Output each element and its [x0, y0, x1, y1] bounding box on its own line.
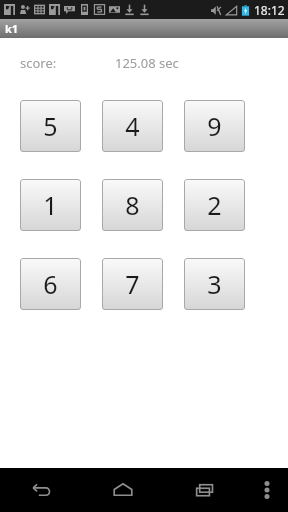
staticText: 8 — [125, 188, 140, 222]
button[interactable]: 3 — [184, 258, 245, 310]
staticText: 125.08 sec — [115, 54, 179, 72]
button[interactable]: 4 — [102, 100, 163, 152]
staticText: 7 — [125, 267, 140, 301]
staticText: score: — [20, 54, 57, 72]
button[interactable]: 8 — [102, 179, 163, 231]
button[interactable]: 6 — [20, 258, 81, 310]
staticText: 1 — [43, 188, 58, 222]
button[interactable]: Home — [82, 468, 164, 512]
staticText: 18:12 — [254, 2, 285, 18]
staticText: 5 — [43, 109, 58, 143]
button[interactable]: 9 — [184, 100, 245, 152]
button[interactable]: More options — [246, 468, 288, 512]
button[interactable]: 5 — [20, 100, 81, 152]
staticText: 3 — [207, 267, 222, 301]
button[interactable]: 1 — [20, 179, 81, 231]
button[interactable]: Recent apps — [164, 468, 246, 512]
staticText: 9 — [207, 109, 222, 143]
button[interactable]: Back — [0, 468, 82, 512]
staticText: k1 — [5, 21, 19, 36]
staticText: 4 — [125, 109, 140, 143]
staticText: 2 — [207, 188, 222, 222]
button[interactable]: 2 — [184, 179, 245, 231]
button[interactable]: 7 — [102, 258, 163, 310]
staticText: 6 — [43, 267, 58, 301]
